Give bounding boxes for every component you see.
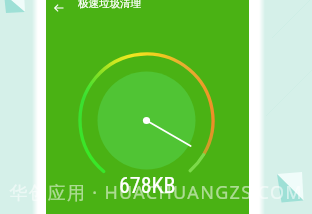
button[interactable]: Back <box>46 0 71 16</box>
staticText: 华创应用 · HUACHUANGZS.COM <box>0 180 312 205</box>
staticText: 678KB <box>119 173 176 199</box>
staticText: 极速垃圾清理 <box>78 0 141 10</box>
